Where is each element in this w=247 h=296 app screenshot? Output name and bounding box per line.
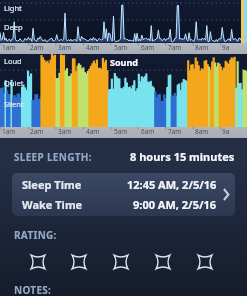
staticText: 1am [2,43,16,52]
staticText: SLEEP LENGTH: [14,150,92,164]
staticText: 8am [195,43,209,52]
staticText: NOTES: [14,283,52,296]
button[interactable]: Rate 3 stars [108,249,134,275]
staticText: Sleep Time [22,177,82,192]
staticText: 2am [30,127,44,136]
staticText: Sound [110,56,138,68]
button[interactable]: Rate 2 stars [66,249,92,275]
staticText: Light [4,3,22,13]
button[interactable]: Rate 5 stars [192,249,218,275]
staticText: Silent [4,99,24,109]
staticText: 7am [168,43,182,52]
staticText: 12:45 AM, 2/5/16 [127,177,217,192]
staticText: Deep [4,22,23,32]
staticText: 9a [222,127,230,136]
staticText: 3am [58,43,72,52]
staticText: Quiet [4,78,24,88]
staticText: 4am [86,127,100,136]
button[interactable]: Sleep depth chart [0,0,247,54]
button[interactable]: Sound chart [0,54,247,138]
button[interactable]: Rate 1 stars [25,249,51,275]
staticText: 5am [114,127,128,136]
staticText: 4am [86,43,100,52]
staticText: 6am [141,127,155,136]
staticText: Wake Time [22,197,83,212]
staticText: 9a [222,43,230,52]
staticText: 9:00 AM, 2/5/16 [133,197,217,212]
staticText: 1am [2,127,16,136]
button[interactable]: Sleep Time [12,173,235,216]
staticText: 7am [168,127,182,136]
staticText: 8 hours 15 minutes [130,149,235,164]
staticText: 3am [58,127,72,136]
staticText: 2am [30,43,44,52]
staticText: Loud [4,56,22,66]
staticText: 6am [141,43,155,52]
staticText: 8am [195,127,209,136]
button[interactable]: Rate 4 stars [150,249,176,275]
staticText: RATING: [14,228,57,242]
staticText: 5am [114,43,128,52]
